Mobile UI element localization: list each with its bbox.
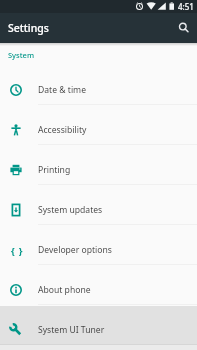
- button[interactable]: { }: [0, 230, 197, 270]
- button[interactable]: System UI Tuner: [0, 310, 197, 350]
- staticText: Printing: [38, 164, 71, 176]
- staticText: Accessibility: [38, 124, 87, 136]
- button[interactable]: Accessibility: [0, 110, 197, 150]
- staticText: System UI Tuner: [38, 324, 105, 336]
- button[interactable]: System updates: [0, 190, 197, 230]
- button[interactable]: Date & time: [0, 70, 197, 110]
- staticText: Settings: [8, 21, 49, 35]
- staticText: System: [8, 50, 35, 60]
- button[interactable]: Printing: [0, 150, 197, 190]
- staticText: 4:51: [178, 1, 194, 12]
- staticText: About phone: [38, 284, 91, 296]
- staticText: Date & time: [38, 84, 87, 96]
- staticText: Developer options: [38, 244, 112, 256]
- button[interactable]: About phone: [0, 270, 197, 310]
- staticText: System updates: [38, 204, 103, 216]
- button[interactable]: [171, 15, 197, 41]
- staticText: { }: [11, 244, 24, 257]
